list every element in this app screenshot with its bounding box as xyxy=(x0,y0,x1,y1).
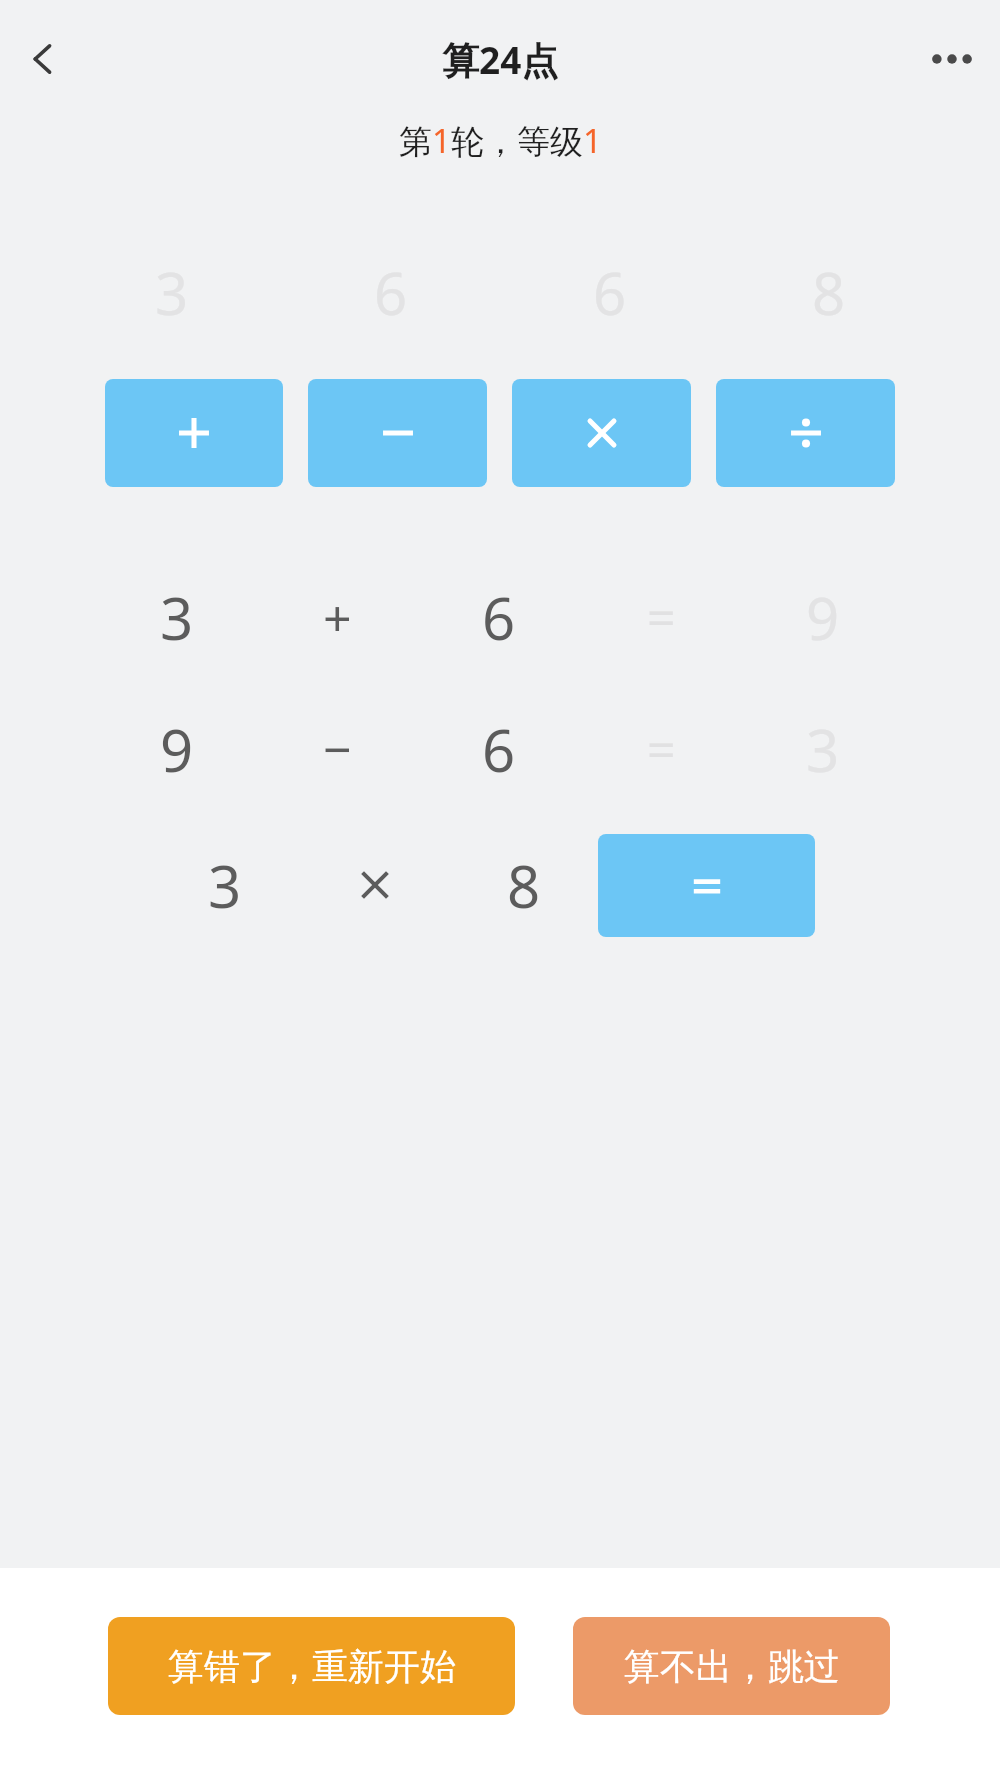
staticText: 3 xyxy=(160,578,194,657)
staticText: 6 xyxy=(482,710,516,789)
staticText: 6 xyxy=(374,253,408,323)
button[interactable]: Minus xyxy=(308,379,487,487)
staticText: 6 xyxy=(482,578,516,657)
button[interactable]: Multiply xyxy=(512,379,691,487)
staticText: + xyxy=(323,583,352,651)
button[interactable]: 算不出，跳过 xyxy=(573,1617,890,1715)
staticText: 3 xyxy=(208,846,242,925)
button[interactable]: Plus xyxy=(105,379,283,487)
staticText: 9 xyxy=(806,578,840,657)
button[interactable]: Back xyxy=(6,22,80,96)
staticText: 算不出，跳过 xyxy=(624,1644,840,1689)
staticText: 3 xyxy=(806,710,840,789)
staticText: 第1轮，等级1 xyxy=(399,118,602,163)
staticText: 8 xyxy=(507,846,541,925)
button[interactable]: Equals xyxy=(598,834,815,937)
staticText: = xyxy=(647,715,676,783)
button[interactable]: Divide xyxy=(716,379,895,487)
button[interactable]: More options xyxy=(914,21,990,97)
staticText: 9 xyxy=(160,710,194,789)
button[interactable]: 算错了，重新开始 xyxy=(108,1617,515,1715)
staticText: − xyxy=(323,715,352,783)
staticText: 8 xyxy=(812,253,846,323)
staticText: 算错了，重新开始 xyxy=(168,1644,456,1689)
staticText: = xyxy=(647,583,676,651)
staticText: 算24点 xyxy=(442,34,559,85)
staticText: 3 xyxy=(155,253,189,323)
staticText: 6 xyxy=(593,253,627,323)
